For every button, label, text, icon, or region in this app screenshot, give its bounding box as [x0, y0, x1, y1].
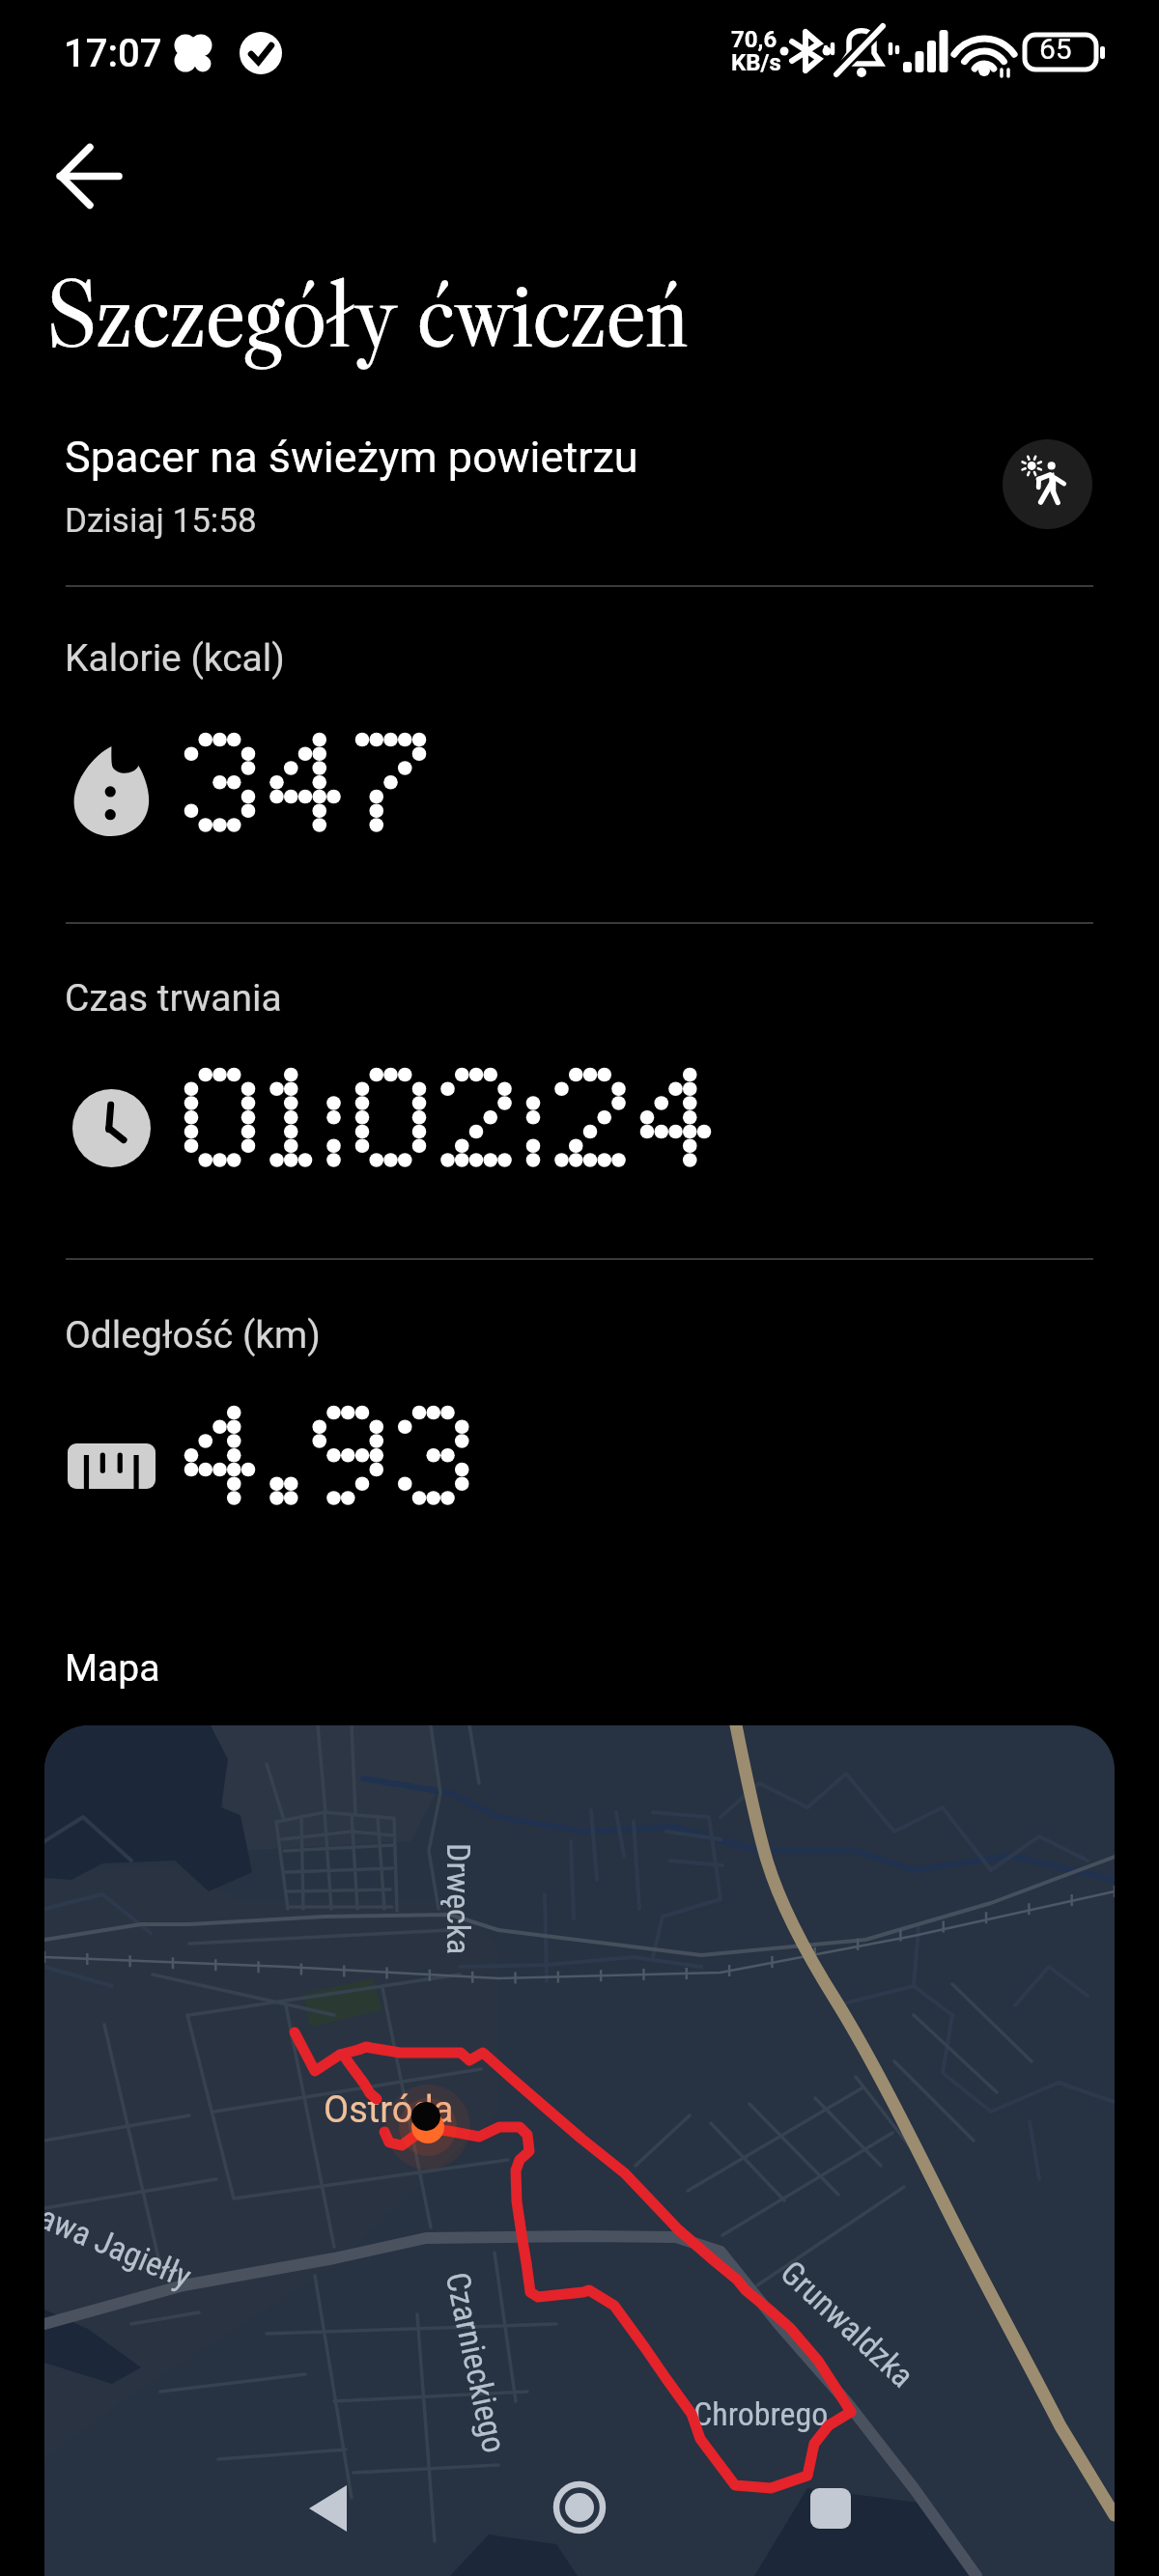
staticText: 65	[1039, 32, 1072, 66]
staticText: KB/s	[731, 49, 781, 76]
button[interactable]: Outdoor walk	[1003, 439, 1092, 529]
staticText: 17:07	[64, 31, 162, 76]
button[interactable]: Back	[42, 129, 136, 223]
staticText: Ostróda	[324, 2088, 454, 2132]
staticText: Dzisiaj 15:58	[65, 501, 257, 541]
staticText: Czarnieckiego	[438, 2269, 514, 2456]
staticText: Grunwaldzka	[773, 2253, 922, 2395]
staticText: Odległość (km)	[65, 1313, 321, 1358]
staticText: Szczegóły ćwiczeń	[46, 256, 689, 371]
staticText: Czas trwania	[65, 976, 282, 1021]
button[interactable]: Home	[533, 2461, 626, 2554]
staticText: awa Jagiełły	[44, 2198, 197, 2296]
staticText: Szczegóły ćwiczeń	[46, 256, 689, 371]
button[interactable]: Recent apps	[784, 2462, 877, 2555]
staticText: Spacer na świeżym powietrzu	[65, 432, 638, 483]
staticText: Chrobrego	[693, 2394, 829, 2433]
staticText: Kalorie (kcal)	[65, 636, 285, 681]
staticText: Mapa	[65, 1646, 160, 1691]
staticText: 70,6	[731, 26, 777, 53]
button[interactable]: Back	[282, 2462, 375, 2555]
staticText: Drwęcka	[439, 1843, 478, 1955]
button[interactable]: Map	[44, 1725, 1115, 2576]
